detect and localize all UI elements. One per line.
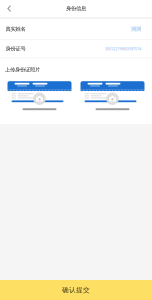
staticText: 上传身份证照片	[5, 66, 40, 73]
staticText: 真实姓名	[5, 26, 25, 32]
staticText: 350122199603187514	[105, 46, 141, 51]
button[interactable]: Back	[0, 0, 19, 17]
staticText: 身份证号	[5, 45, 25, 52]
button[interactable]: Upload ID card front	[7, 81, 71, 116]
button[interactable]: Upload ID card back	[80, 81, 144, 116]
staticText: 测测	[131, 26, 141, 32]
staticText: 身份信息	[66, 5, 86, 12]
staticText: 确认提交	[62, 286, 90, 294]
button[interactable]: 确认提交	[0, 280, 152, 300]
